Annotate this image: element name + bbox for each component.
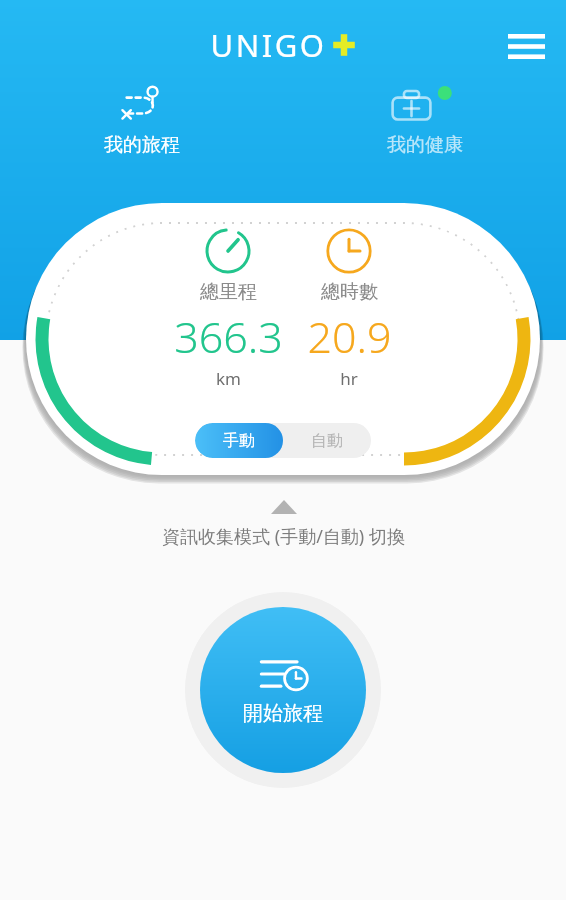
- staticText: 總時數: [321, 280, 378, 304]
- staticText: 20.9: [307, 307, 392, 366]
- button[interactable]: 開始旅程: [200, 607, 366, 773]
- staticText: 自動: [311, 431, 343, 451]
- staticText: 開始旅程: [243, 701, 323, 726]
- button[interactable]: 自動: [283, 423, 371, 458]
- button[interactable]: 我的健康: [283, 85, 566, 157]
- button[interactable]: 手動: [195, 423, 283, 458]
- staticText: 總里程: [200, 280, 257, 304]
- staticText: 手動: [223, 431, 255, 451]
- button[interactable]: 我的旅程: [0, 85, 283, 157]
- staticText: UNIGO: [210, 24, 327, 66]
- staticText: 資訊收集模式 (手動/自動) 切換: [162, 524, 405, 549]
- staticText: 我的健康: [387, 133, 463, 157]
- staticText: 366.3: [174, 307, 283, 366]
- button[interactable]: Menu: [500, 20, 552, 72]
- staticText: hr: [340, 367, 358, 390]
- staticText: km: [216, 367, 241, 390]
- staticText: 我的旅程: [104, 133, 180, 157]
